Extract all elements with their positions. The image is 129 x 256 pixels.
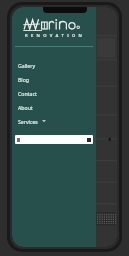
staticText: Services xyxy=(18,118,38,125)
staticText: Contact xyxy=(18,90,37,97)
staticText: Blog xyxy=(18,76,30,83)
button[interactable]: Contact xyxy=(12,86,96,100)
staticText: R E N O V A T I O N xyxy=(12,33,96,39)
button[interactable]: Blog xyxy=(12,72,96,86)
button[interactable]: Services xyxy=(12,114,96,128)
button[interactable]: Search xyxy=(15,135,93,144)
staticText: About xyxy=(18,104,33,111)
button[interactable]: Marino home xyxy=(12,16,96,32)
button[interactable]: Gallery xyxy=(12,58,96,72)
button[interactable]: About xyxy=(12,100,96,114)
staticText: Gallery xyxy=(18,62,36,69)
